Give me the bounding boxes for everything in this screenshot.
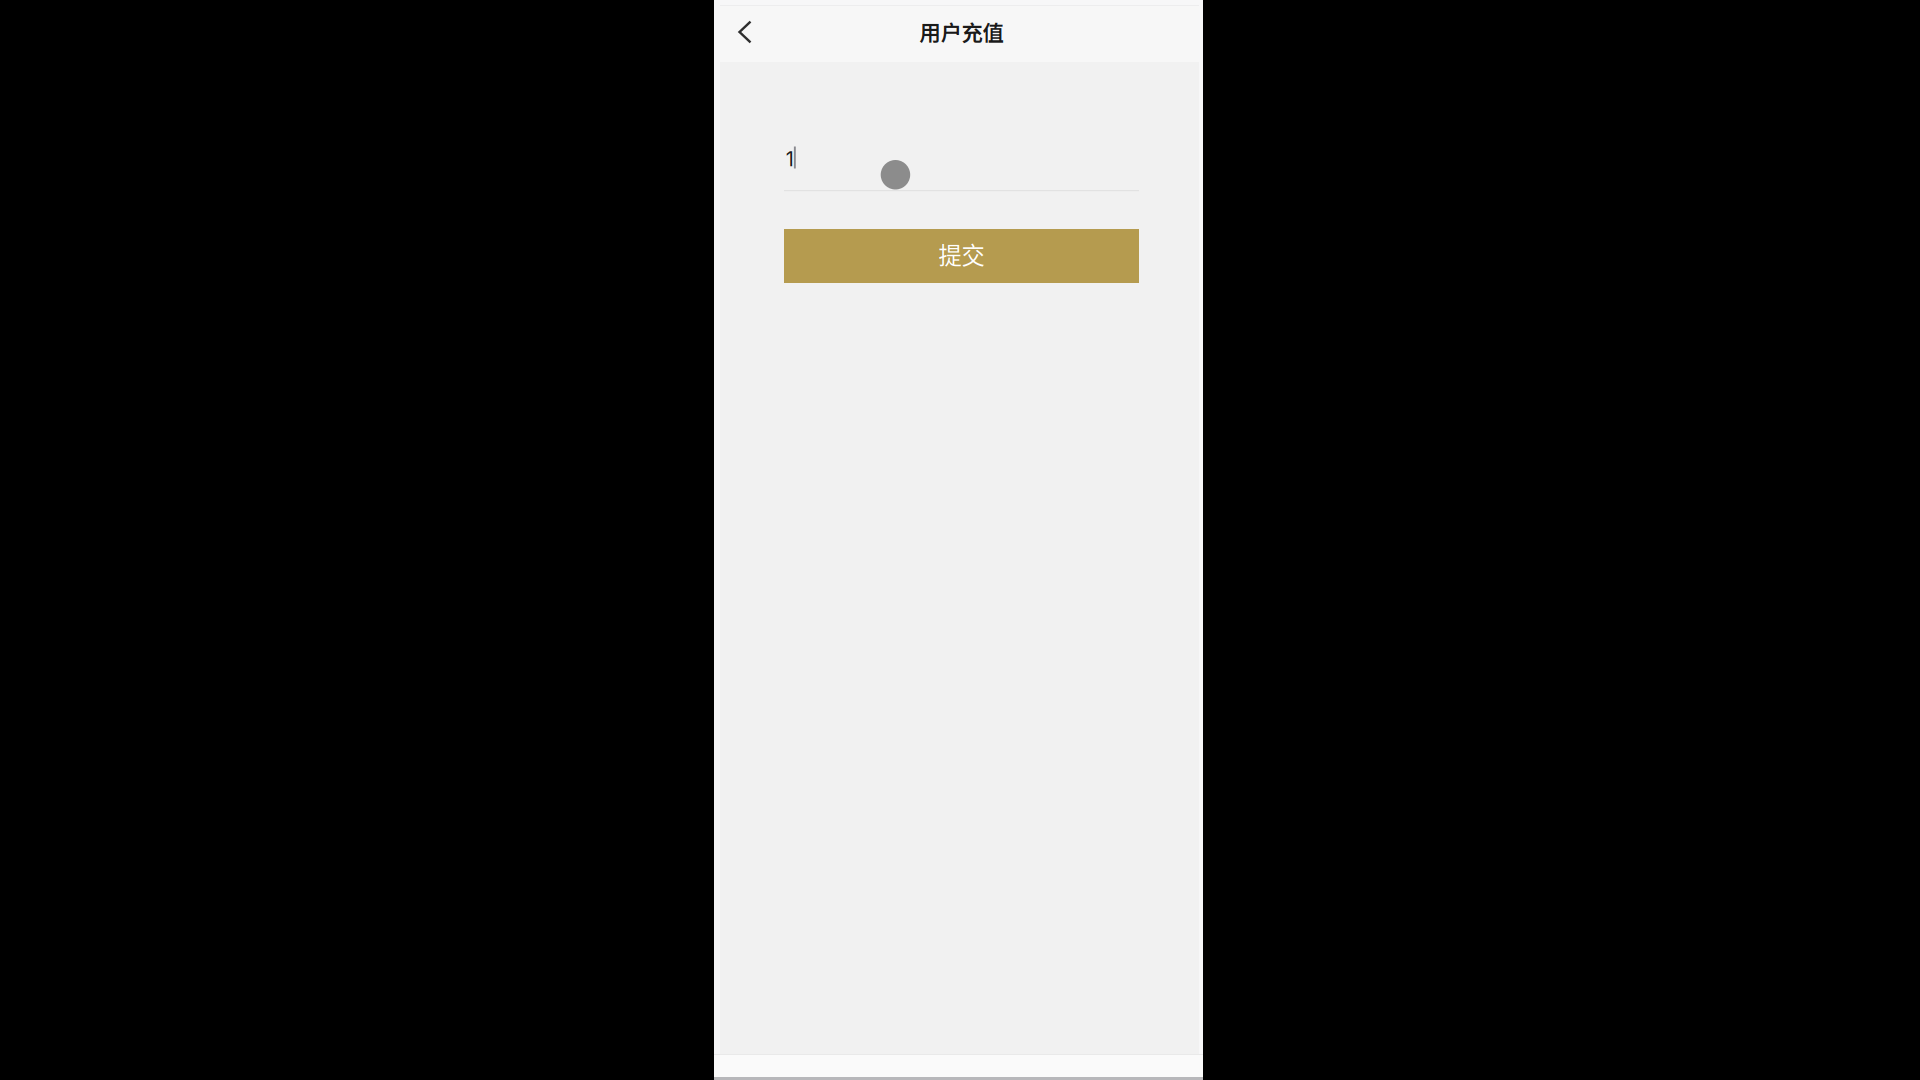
button[interactable]: Back	[722, 8, 768, 56]
staticText: 1	[786, 147, 794, 171]
button[interactable]: 提交	[784, 229, 1139, 283]
staticText: 提交	[938, 237, 984, 271]
button[interactable]: Recharge amount	[784, 137, 1139, 191]
staticText: 用户充值	[919, 16, 1003, 47]
